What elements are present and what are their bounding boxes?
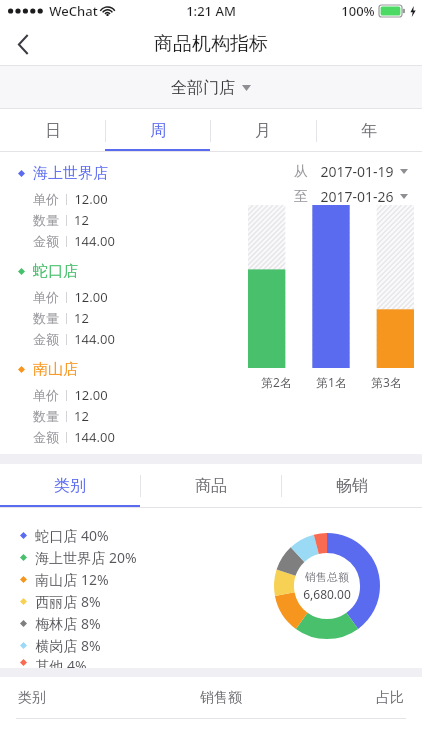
staticText: 蛇口店 [33, 262, 78, 281]
staticText: 12.00 [74, 190, 108, 208]
staticText: 金额 [33, 429, 59, 445]
staticText: 蛇口店 40% [35, 526, 109, 545]
staticText: 144.00 [74, 428, 115, 446]
button[interactable]: 全部门店 [0, 66, 422, 109]
staticText: 数量 [33, 212, 59, 228]
staticText: WeChat [49, 2, 98, 20]
staticText: 12 [74, 211, 89, 229]
button[interactable]: 商品 [140, 464, 281, 508]
staticText: 西丽店 8% [35, 592, 101, 611]
button[interactable]: 周 [105, 109, 210, 152]
staticText: 类别 [18, 689, 46, 707]
staticText: 销售总额 [305, 570, 349, 584]
staticText: 12 [74, 407, 89, 425]
staticText: 第2名 [261, 374, 292, 390]
staticText: 12.00 [74, 386, 108, 404]
staticText: 单价 [33, 289, 59, 305]
staticText: 第3名 [371, 374, 402, 390]
staticText: 至 [294, 188, 308, 206]
staticText: 12.00 [74, 288, 108, 306]
staticText: 梅林店 8% [35, 614, 101, 633]
button[interactable]: 至 [294, 187, 408, 206]
staticText: 全部门店 [171, 78, 235, 98]
button[interactable]: 月 [210, 109, 316, 152]
button[interactable]: 日 [0, 109, 105, 152]
staticText: 海上世界店 20% [35, 548, 137, 567]
staticText: 南山店 [33, 360, 78, 379]
staticText: 月 [255, 121, 271, 141]
button[interactable]: 年 [316, 109, 422, 152]
staticText: 畅销 [336, 476, 368, 496]
staticText: 144.00 [74, 330, 115, 348]
staticText: 其他 4% [35, 656, 87, 668]
staticText: 金额 [33, 233, 59, 249]
staticText: 单价 [33, 387, 59, 403]
staticText: 日 [45, 121, 61, 141]
staticText: 金额 [33, 331, 59, 347]
staticText: 类别 [54, 476, 86, 496]
staticText: 海上世界店 [33, 164, 108, 183]
staticText: 1:21 AM [186, 2, 236, 20]
staticText: 第1名 [316, 374, 347, 390]
staticText: 横岗店 8% [35, 636, 101, 655]
staticText: 2017-01-26 [320, 187, 394, 206]
button[interactable]: 从 [294, 162, 408, 181]
staticText: 数量 [33, 310, 59, 326]
staticText: 12 [74, 309, 89, 327]
staticText: 144.00 [74, 232, 115, 250]
staticText: 周 [150, 121, 166, 141]
staticText: 2017-01-19 [320, 162, 394, 181]
staticText: 商品 [195, 476, 227, 496]
staticText: 数量 [33, 408, 59, 424]
staticText: 商品机构指标 [154, 32, 268, 56]
staticText: 100% [341, 2, 375, 20]
staticText: 年 [361, 121, 377, 141]
button[interactable]: Back [0, 22, 46, 66]
button[interactable]: 畅销 [281, 464, 422, 508]
staticText: 占比 [376, 689, 404, 707]
staticText: 从 [294, 163, 308, 181]
staticText: 销售额 [200, 689, 242, 707]
staticText: 单价 [33, 191, 59, 207]
staticText: 6,680.00 [303, 586, 351, 602]
button[interactable]: 类别 [0, 464, 140, 508]
staticText: 南山店 12% [35, 570, 109, 589]
